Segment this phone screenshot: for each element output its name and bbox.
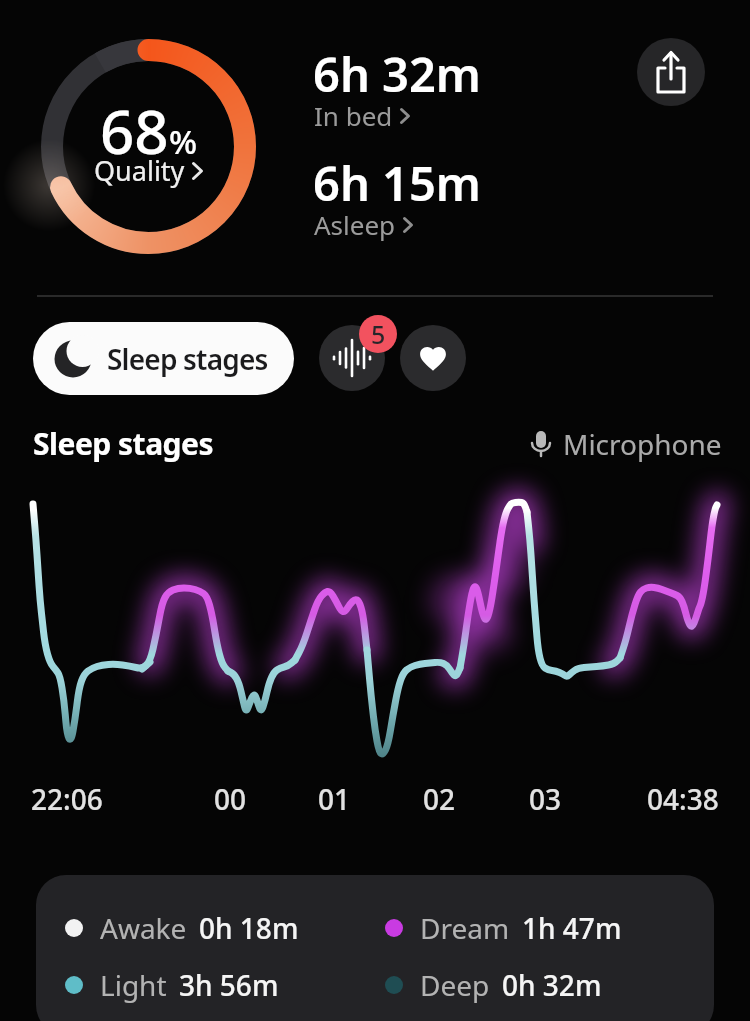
staticText: Awake [100,909,187,947]
staticText: Microphone [563,425,722,463]
button[interactable]: Asleep [314,207,413,242]
staticText: 6h 15m [313,151,481,215]
staticText: Deep [420,966,490,1004]
staticText: 68 [100,90,169,172]
staticText: 3h 56m [179,966,279,1004]
staticText: 6h 32m [313,42,481,106]
button[interactable] [637,38,705,106]
staticText: 01 [318,780,351,818]
staticText: 0h 18m [199,909,299,947]
staticText: 5 [371,317,386,351]
button[interactable]: Sleep stages [33,322,294,395]
button[interactable]: Dream [385,909,622,947]
staticText: 00 [214,780,247,818]
staticText: Quality [94,152,185,189]
button[interactable] [400,325,466,391]
button[interactable]: In bed [314,98,410,133]
button[interactable]: Light [65,966,279,1004]
button[interactable]: 68 [40,38,257,255]
staticText: Asleep [314,207,396,242]
staticText: 22:06 [31,780,103,818]
staticText: Dream [420,909,510,947]
staticText: % [169,119,198,164]
staticText: Sleep stages [107,340,268,378]
staticText: Light [100,966,167,1004]
staticText: 02 [423,780,456,818]
staticText: 03 [529,780,562,818]
button[interactable]: Awake [65,909,299,947]
button[interactable]: Deep [385,966,602,1004]
staticText: Sleep stages [33,423,214,464]
button[interactable]: Microphone [529,425,722,463]
button[interactable] [319,325,385,391]
staticText: In bed [314,98,393,133]
staticText: 1h 47m [522,909,622,947]
staticText: 04:38 [647,780,719,818]
staticText: 0h 32m [502,966,602,1004]
